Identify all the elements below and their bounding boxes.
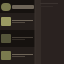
button[interactable] — [0, 30, 35, 47]
button[interactable] — [0, 13, 35, 30]
button[interactable] — [0, 47, 35, 64]
button[interactable]: Detail pane — [35, 0, 64, 64]
button[interactable]: Header — [0, 0, 35, 13]
